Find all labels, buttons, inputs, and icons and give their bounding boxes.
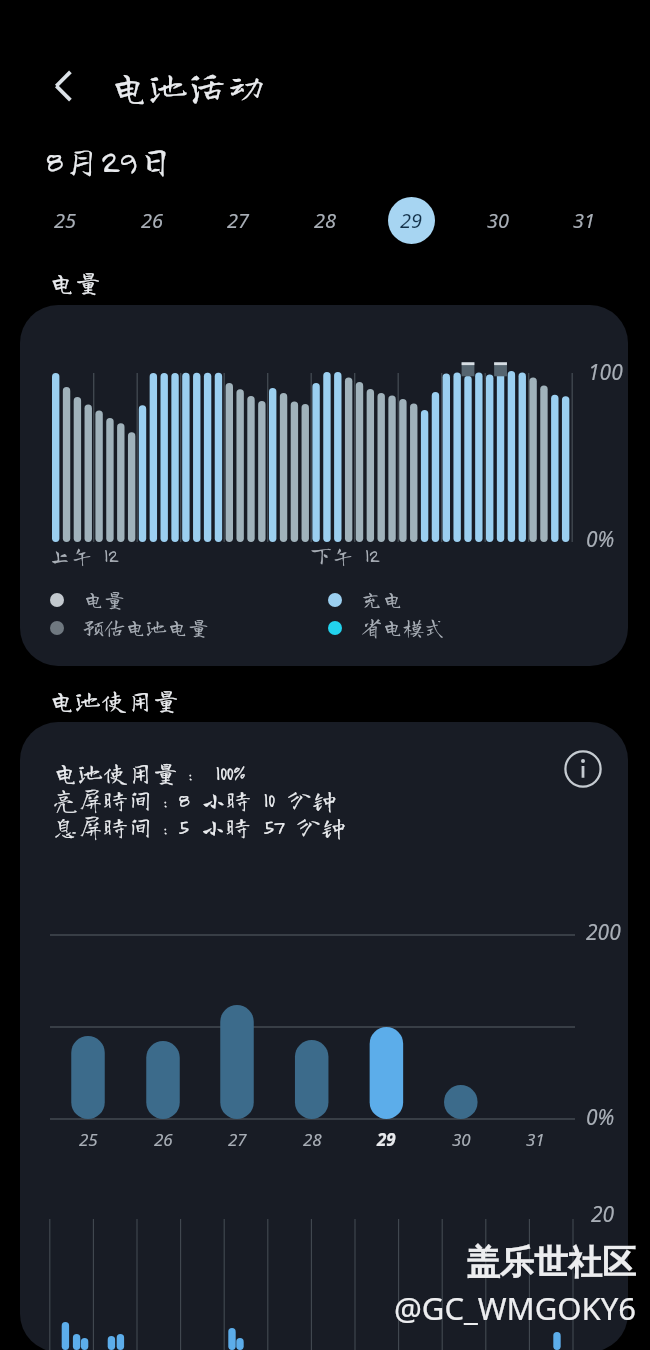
staticText: 29	[400, 207, 423, 234]
button[interactable]: Info	[561, 747, 605, 791]
staticText: 0%	[586, 525, 615, 554]
staticText: 省电模式	[361, 617, 445, 638]
staticText: 上午 12	[49, 545, 118, 567]
staticText: 100	[588, 358, 623, 387]
staticText: 31	[526, 1128, 545, 1151]
button[interactable]: 26	[129, 197, 176, 244]
staticText: 26	[154, 1128, 173, 1151]
staticText: 25	[79, 1128, 98, 1151]
staticText: 电池使用量	[49, 687, 180, 713]
staticText: 电池活动	[110, 67, 267, 106]
staticText: 27	[227, 207, 250, 234]
button[interactable]: 省电模式	[328, 617, 445, 638]
button[interactable]: Back	[40, 62, 88, 110]
staticText: 30	[487, 207, 510, 234]
staticText: 电池使用量： 100%	[53, 760, 245, 785]
staticText: 31	[573, 207, 596, 234]
button[interactable]: 电量	[50, 589, 125, 610]
staticText: @GC_WMGOKY6	[394, 1287, 636, 1329]
button[interactable]: 27	[215, 197, 262, 244]
button[interactable]: 充电	[328, 589, 403, 610]
staticText: 8月29日	[45, 141, 175, 180]
staticText: 29	[377, 1128, 396, 1151]
staticText: 28	[303, 1128, 322, 1151]
staticText: 30	[452, 1128, 471, 1151]
staticText: 盖乐世社区	[466, 1241, 636, 1284]
staticText: 亮屏时间：8 小时 10 分钟	[53, 787, 337, 812]
button[interactable]: 31	[561, 197, 608, 244]
button[interactable]: 30	[475, 197, 522, 244]
button[interactable]: 100	[20, 305, 628, 666]
staticText: 25	[54, 207, 77, 234]
staticText: 20	[591, 1200, 615, 1229]
staticText: 充电	[361, 589, 403, 610]
button[interactable]: 25	[42, 197, 89, 244]
staticText: 200	[586, 918, 621, 947]
staticText: 电量	[49, 269, 102, 295]
button[interactable]: 28	[302, 197, 349, 244]
staticText: 预估电池电量	[83, 617, 209, 638]
staticText: 27	[228, 1128, 247, 1151]
button[interactable]: 29	[388, 197, 435, 244]
button[interactable]: 电池使用量： 100%	[20, 722, 628, 1350]
staticText: 28	[314, 207, 337, 234]
staticText: 息屏时间：5 小时 57 分钟	[53, 814, 346, 839]
button[interactable]: 预估电池电量	[50, 617, 209, 638]
staticText: 0%	[586, 1103, 615, 1132]
staticText: 26	[141, 207, 164, 234]
staticText: 下午 12	[310, 545, 379, 567]
staticText: 电量	[83, 589, 125, 610]
